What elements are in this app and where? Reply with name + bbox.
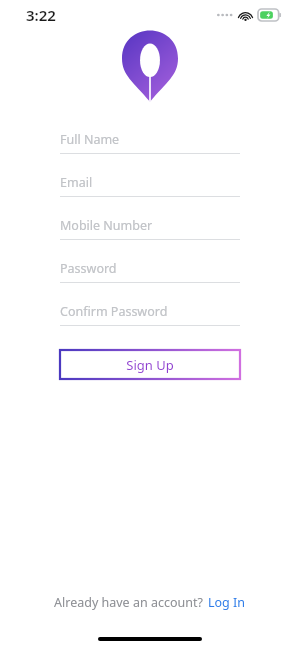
staticText: Email (60, 174, 93, 191)
staticText: Full Name (60, 131, 120, 148)
button[interactable]: Confirm Password (60, 303, 240, 326)
button[interactable]: Password (60, 260, 240, 283)
button[interactable]: Mobile Number (60, 217, 240, 240)
button[interactable]: Email (60, 174, 240, 197)
button[interactable]: Log In (208, 594, 246, 611)
staticText: Sign Up (126, 356, 174, 374)
staticText: Already have an account? (54, 594, 203, 611)
staticText: Mobile Number (60, 217, 153, 234)
button[interactable]: Sign Up (60, 350, 240, 379)
staticText: Confirm Password (60, 303, 168, 320)
other: Home indicator (98, 637, 202, 641)
staticText: Password (60, 260, 117, 277)
staticText: 3:22 (26, 5, 56, 25)
staticText: Log In (208, 594, 246, 611)
button[interactable]: Full Name (60, 131, 240, 154)
